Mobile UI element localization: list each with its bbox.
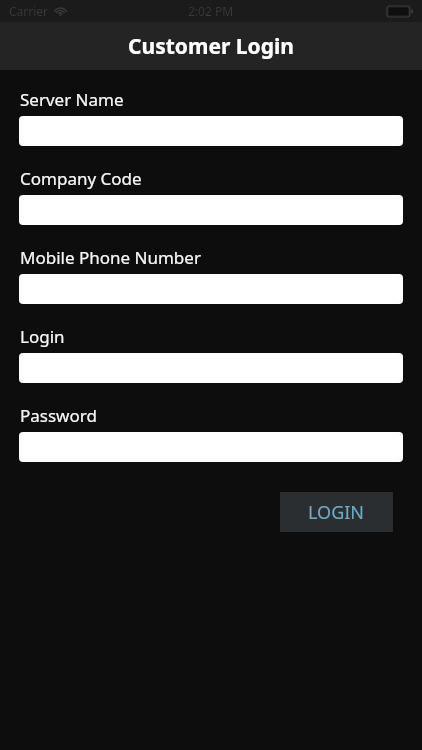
other: Battery	[387, 6, 413, 17]
staticText: Login	[20, 325, 65, 347]
button[interactable]: Company Code	[19, 195, 403, 225]
button[interactable]: Server Name	[19, 116, 403, 146]
button[interactable]: Mobile Phone Number	[19, 274, 403, 304]
staticText: 2:02 PM	[188, 3, 234, 19]
staticText: LOGIN	[308, 500, 365, 525]
staticText: Password	[20, 404, 97, 426]
staticText: Customer Login	[128, 32, 294, 61]
other: Wi-Fi	[54, 6, 67, 16]
button[interactable]: LOGIN	[280, 492, 393, 532]
button[interactable]: Login	[19, 353, 403, 383]
staticText: Carrier	[9, 3, 49, 19]
staticText: Mobile Phone Number	[20, 246, 201, 268]
staticText: Company Code	[20, 167, 142, 189]
staticText: Server Name	[20, 88, 124, 110]
button[interactable]: Password	[19, 432, 403, 462]
